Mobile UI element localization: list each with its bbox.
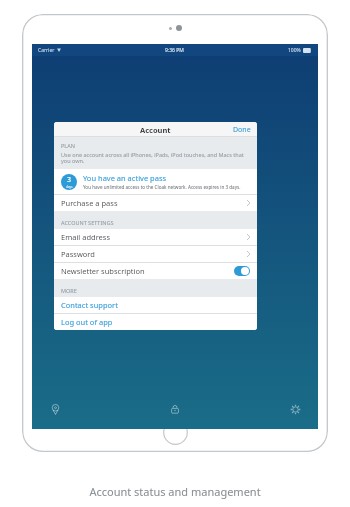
button[interactable]: Email address — [54, 229, 257, 245]
other: Newsletter subscription, on — [234, 266, 250, 276]
button[interactable]: Purchase a pass — [54, 195, 257, 211]
staticText: You have an active pass — [83, 173, 167, 183]
staticText: Password — [61, 249, 95, 259]
staticText: 9:36 PM — [165, 47, 184, 54]
staticText: Email address — [61, 232, 111, 242]
staticText: days — [66, 185, 73, 189]
staticText: Use one account across all iPhones, iPad… — [61, 151, 249, 165]
staticText: Done — [233, 125, 251, 135]
staticText: Log out of app — [61, 317, 113, 327]
button[interactable]: Contact support — [54, 297, 257, 313]
button[interactable]: Security — [164, 398, 186, 420]
button[interactable]: Password — [54, 246, 257, 262]
button[interactable]: Locations — [44, 398, 66, 420]
staticText: 3 — [67, 175, 72, 185]
button[interactable]: Settings — [284, 398, 306, 420]
staticText: PLAN — [61, 142, 75, 149]
staticText: ACCOUNT SETTINGS — [61, 219, 114, 226]
staticText: Carrier — [38, 47, 55, 54]
staticText: 100% — [288, 47, 301, 54]
button[interactable]: Log out of app — [54, 314, 257, 330]
button[interactable]: 3 — [54, 169, 257, 194]
staticText: MORE — [61, 287, 77, 294]
staticText: Account — [140, 125, 171, 135]
button[interactable]: Newsletter subscription — [54, 263, 257, 279]
staticText: Account status and management — [89, 484, 261, 499]
staticText: Contact support — [61, 300, 118, 310]
button[interactable]: Done — [227, 122, 257, 137]
staticText: You have unlimited access to the Cloak n… — [83, 184, 241, 190]
staticText: Newsletter subscription — [61, 266, 145, 276]
staticText: Purchase a pass — [61, 198, 118, 208]
